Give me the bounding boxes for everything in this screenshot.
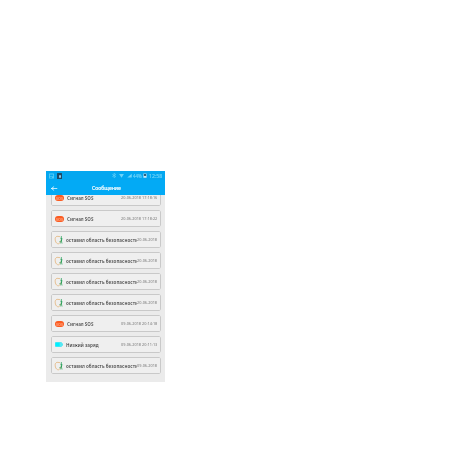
button[interactable]: SOS	[51, 315, 161, 332]
staticText: 20-06-2018	[137, 279, 158, 284]
staticText: Сигнал SOS	[67, 195, 94, 201]
staticText: Сообщение	[92, 185, 121, 192]
staticText: Низкий заряд	[66, 342, 99, 348]
staticText: оставил область безопасности	[66, 258, 137, 264]
staticText: SOS	[56, 196, 63, 201]
staticText: оставил область безопасности	[66, 363, 137, 369]
staticText: оставил область безопасности	[66, 300, 137, 306]
button[interactable]: оставил область безопасности	[51, 357, 161, 374]
staticText: Сигнал SOS	[67, 216, 94, 222]
staticText: оставил область безопасности	[66, 237, 137, 243]
staticText: 20-06-2018	[137, 258, 158, 263]
staticText: 12:58	[149, 172, 163, 179]
staticText: 44%	[133, 173, 142, 179]
button[interactable]: Back	[47, 181, 61, 195]
button[interactable]: оставил область безопасности	[51, 294, 161, 311]
staticText: 09-06-2018	[137, 363, 158, 368]
staticText: 20-06-2018	[137, 300, 158, 305]
button[interactable]: оставил область безопасности	[51, 252, 161, 269]
staticText: 20-06-2018 17:18:16	[121, 195, 158, 200]
staticText: Сигнал SOS	[67, 321, 94, 327]
staticText: 09-06-2018 20:11:13	[121, 342, 158, 347]
button[interactable]: Низкий заряд	[51, 336, 161, 353]
staticText: оставил область безопасности	[66, 279, 137, 285]
staticText: 09-06-2018 20:14:18	[121, 321, 158, 326]
staticText: SOS	[56, 322, 63, 327]
button[interactable]: SOS	[51, 189, 161, 206]
button[interactable]: SOS	[51, 210, 161, 227]
button[interactable]: оставил область безопасности	[51, 273, 161, 290]
button[interactable]: оставил область безопасности	[51, 231, 161, 248]
staticText: 20-06-2018 17:18:22	[121, 216, 158, 221]
staticText: 20-06-2018	[137, 237, 158, 242]
staticText: SOS	[56, 217, 63, 222]
